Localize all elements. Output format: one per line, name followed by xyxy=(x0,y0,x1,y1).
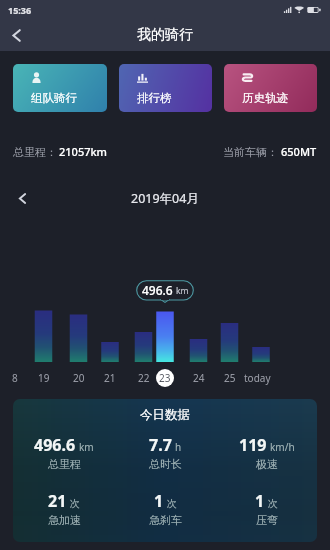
staticText: 21 xyxy=(48,490,67,512)
button[interactable]: 组队骑行 xyxy=(13,64,107,112)
staticText: 1 xyxy=(154,490,164,512)
staticText: 我的骑行 xyxy=(137,26,193,44)
staticText: 496.6 xyxy=(142,282,173,298)
button[interactable]: 19 xyxy=(24,370,64,386)
staticText: 总时长 xyxy=(149,457,182,471)
staticText: h xyxy=(175,440,182,454)
button[interactable]: 历史轨迹 xyxy=(224,64,317,112)
button[interactable]: 20 xyxy=(59,370,99,386)
staticText: 排行榜 xyxy=(137,91,172,105)
staticText: 21 xyxy=(104,371,116,385)
staticText: 次 xyxy=(70,497,80,510)
staticText: 23 xyxy=(159,371,171,385)
staticText: 19 xyxy=(38,371,50,385)
button[interactable]: 22 xyxy=(124,370,164,386)
staticText: today xyxy=(244,371,271,385)
staticText: 8 xyxy=(12,371,18,385)
button[interactable]: 8 xyxy=(0,370,35,386)
staticText: 650MT xyxy=(281,144,317,159)
staticText: 历史轨迹 xyxy=(242,91,288,105)
button[interactable]: Previous month xyxy=(10,188,34,208)
staticText: 21057km xyxy=(59,144,108,159)
staticText: 压弯 xyxy=(256,513,278,527)
staticText: 今日数据 xyxy=(13,407,317,423)
staticText: 次 xyxy=(167,497,177,510)
staticText: 次 xyxy=(268,497,278,510)
staticText: 20 xyxy=(73,371,85,385)
button[interactable]: 排行榜 xyxy=(119,64,212,112)
button[interactable]: 23 xyxy=(156,369,174,387)
button[interactable]: 24 xyxy=(179,370,219,386)
staticText: 25 xyxy=(224,371,236,385)
button[interactable]: Back xyxy=(0,19,34,51)
staticText: 当前车辆： xyxy=(223,145,278,159)
staticText: 急加速 xyxy=(48,513,81,527)
staticText: 24 xyxy=(193,371,205,385)
staticText: 7.7 xyxy=(149,434,172,456)
staticText: 急刹车 xyxy=(149,513,182,527)
staticText: 总里程 xyxy=(48,457,81,471)
button[interactable]: 25 xyxy=(210,370,250,386)
staticText: 15:36 xyxy=(8,4,32,16)
staticText: 组队骑行 xyxy=(31,91,77,105)
button[interactable]: 21 xyxy=(90,370,130,386)
button[interactable]: today xyxy=(237,370,277,386)
staticText: km xyxy=(176,285,189,297)
staticText: 2019年04月 xyxy=(131,190,199,207)
staticText: 极速 xyxy=(256,457,278,471)
staticText: km/h xyxy=(270,440,295,454)
staticText: 总里程： xyxy=(13,145,57,159)
staticText: 22 xyxy=(138,371,150,385)
staticText: 496.6 xyxy=(34,434,76,456)
staticText: 119 xyxy=(239,434,267,456)
staticText: km xyxy=(79,440,94,454)
staticText: 1 xyxy=(255,490,265,512)
